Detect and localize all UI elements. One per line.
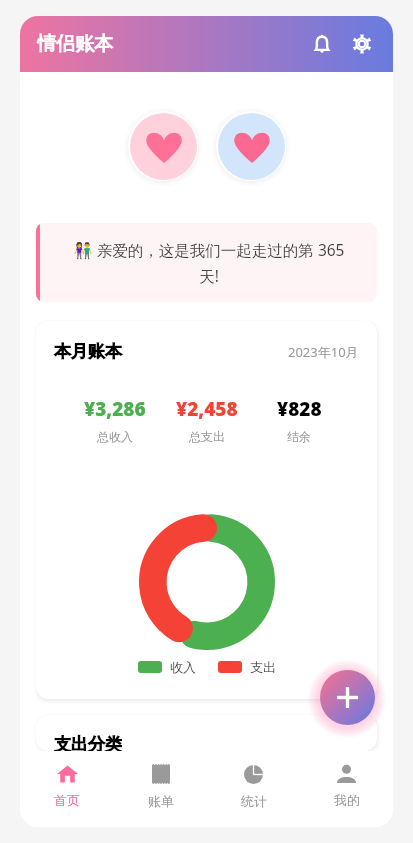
staticText: 账单 <box>148 793 174 809</box>
staticText: 情侣账本 <box>37 32 113 56</box>
button[interactable]: Partner avatar <box>214 109 288 183</box>
staticText: 总支出 <box>189 429 225 444</box>
button[interactable]: 首页 <box>20 751 114 827</box>
staticText: 👫 亲爱的，这是我们一起走过的第 365 天! <box>64 239 354 286</box>
staticText: 结余 <box>287 429 311 444</box>
button[interactable]: Partner avatar <box>126 109 200 183</box>
staticText: ¥3,286 <box>84 396 146 422</box>
button[interactable]: 账单 <box>114 751 207 827</box>
staticText: 支出分类 <box>54 734 122 751</box>
button[interactable]: 统计 <box>207 751 300 827</box>
staticText: 2023年10月 <box>288 343 359 361</box>
staticText: 支出 <box>250 659 276 675</box>
staticText: 首页 <box>54 792 80 808</box>
staticText: 总收入 <box>97 429 133 444</box>
staticText: ¥2,458 <box>176 396 238 422</box>
button[interactable]: Notifications <box>304 26 340 62</box>
staticText: 收入 <box>170 659 196 675</box>
staticText: ¥828 <box>277 396 322 422</box>
staticText: 本月账本 <box>54 341 122 362</box>
button[interactable]: Settings <box>344 26 380 62</box>
button[interactable]: Add record <box>320 670 375 725</box>
staticText: 我的 <box>334 792 360 808</box>
staticText: 统计 <box>241 793 267 809</box>
button[interactable]: 我的 <box>300 751 393 827</box>
